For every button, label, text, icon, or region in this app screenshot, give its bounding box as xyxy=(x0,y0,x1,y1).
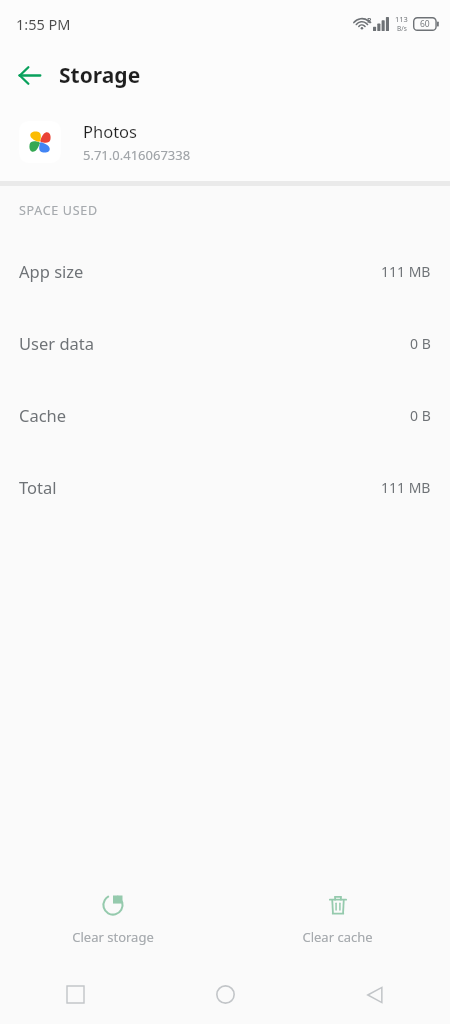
button[interactable]: Recents xyxy=(0,965,150,1024)
staticText: 1:55 PM xyxy=(16,14,71,34)
button[interactable]: Total xyxy=(0,451,450,523)
staticText: Storage xyxy=(59,61,141,90)
button[interactable]: Cache xyxy=(0,379,450,451)
button[interactable]: App size xyxy=(0,235,450,307)
button[interactable]: Back xyxy=(7,53,51,97)
staticText: B/s xyxy=(397,24,407,33)
staticText: Photos xyxy=(83,120,138,142)
staticText: 60 xyxy=(420,18,430,30)
button[interactable]: Back xyxy=(300,965,450,1024)
button[interactable]: Photos xyxy=(0,103,450,181)
button[interactable]: User data xyxy=(0,307,450,379)
staticText: User data xyxy=(19,332,94,354)
staticText: Cache xyxy=(19,404,67,426)
staticText: 111 MB xyxy=(381,478,431,497)
staticText: Clear storage xyxy=(72,928,154,946)
staticText: 111 MB xyxy=(381,262,431,281)
button[interactable]: Clear cache xyxy=(225,873,450,965)
staticText: R xyxy=(367,16,372,26)
staticText: SPACE USED xyxy=(19,202,98,219)
staticText: Total xyxy=(19,476,57,498)
staticText: Clear cache xyxy=(302,928,373,946)
staticText: 0 B xyxy=(410,334,431,353)
staticText: 113 xyxy=(395,14,408,24)
staticText: 0 B xyxy=(410,406,431,425)
staticText: 5.71.0.416067338 xyxy=(83,146,191,164)
button[interactable]: Home xyxy=(150,965,300,1024)
button[interactable]: Clear storage xyxy=(0,873,225,965)
staticText: App size xyxy=(19,260,84,282)
